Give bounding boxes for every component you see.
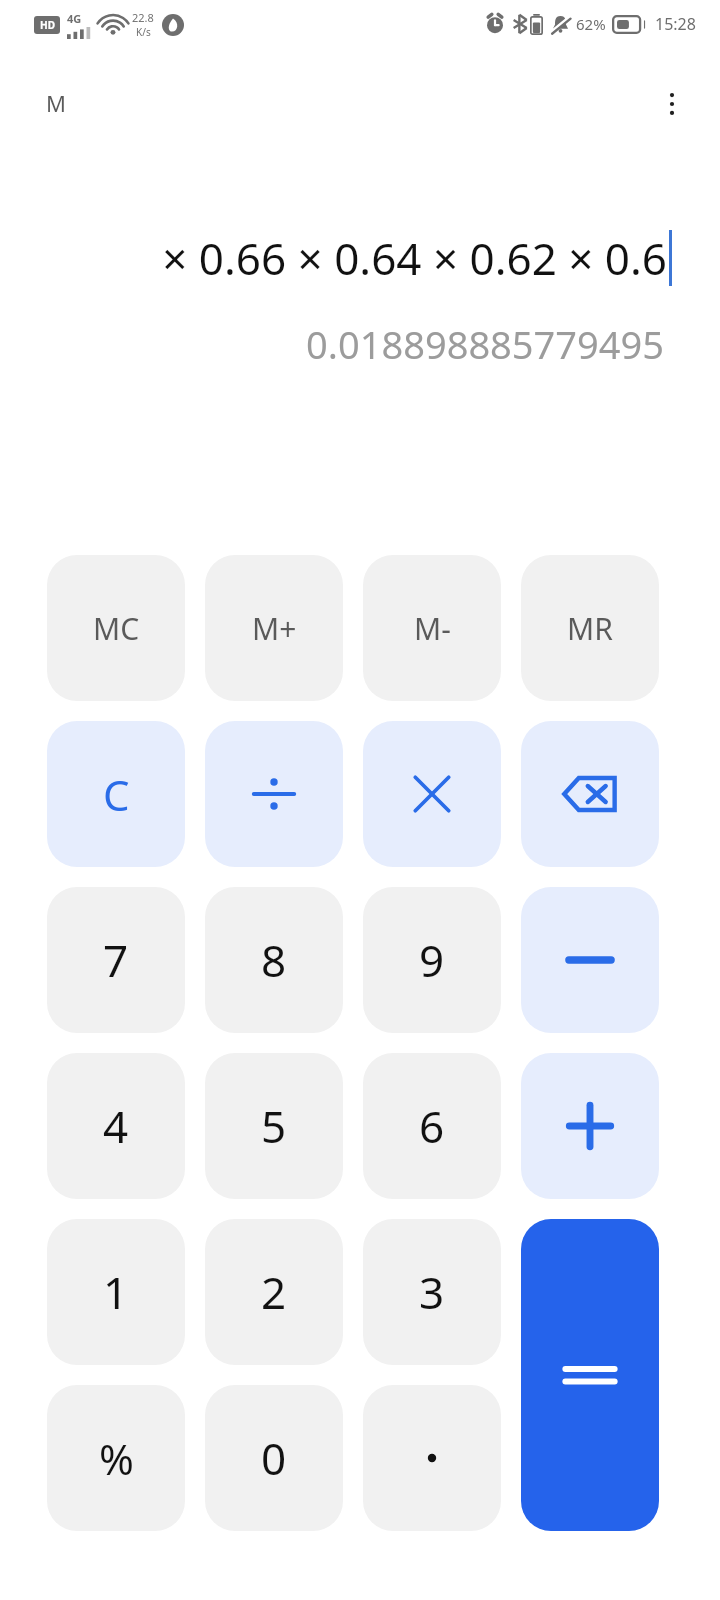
staticText: 9 bbox=[419, 930, 445, 990]
staticText: 1 bbox=[103, 1262, 129, 1322]
staticText: 5 bbox=[261, 1096, 287, 1156]
button[interactable]: 8 bbox=[205, 887, 343, 1033]
button[interactable]: More options bbox=[644, 76, 700, 132]
staticText: M- bbox=[414, 608, 451, 649]
button[interactable]: % bbox=[47, 1385, 185, 1531]
staticText: 3 bbox=[419, 1262, 445, 1322]
staticText: 0 bbox=[261, 1428, 287, 1488]
staticText: 4 bbox=[103, 1096, 129, 1156]
button[interactable]: MC bbox=[47, 555, 185, 701]
staticText: 0.018898885779495 bbox=[306, 318, 664, 370]
button[interactable]: MR bbox=[521, 555, 659, 701]
staticText: 15:28 bbox=[655, 13, 696, 35]
staticText: % bbox=[99, 1430, 134, 1487]
button[interactable]: 3 bbox=[363, 1219, 501, 1365]
button[interactable]: 9 bbox=[363, 887, 501, 1033]
staticText: M bbox=[46, 88, 66, 118]
staticText: 22.8 bbox=[132, 10, 154, 25]
staticText: K/s bbox=[136, 25, 151, 39]
button[interactable]: C bbox=[47, 721, 185, 867]
button[interactable]: Plus bbox=[521, 1053, 659, 1199]
staticText: 4G bbox=[67, 11, 82, 26]
button[interactable]: M+ bbox=[205, 555, 343, 701]
staticText: M+ bbox=[252, 608, 297, 649]
staticText: 2 bbox=[261, 1262, 287, 1322]
button[interactable]: Decimal point bbox=[363, 1385, 501, 1531]
staticText: C bbox=[103, 766, 130, 823]
button[interactable]: 4 bbox=[47, 1053, 185, 1199]
button[interactable]: Minus bbox=[521, 887, 659, 1033]
button[interactable]: Divide bbox=[205, 721, 343, 867]
staticText: × 0.66 × 0.64 × 0.62 × 0.6 bbox=[162, 228, 667, 288]
staticText: 6 bbox=[419, 1096, 445, 1156]
staticText: 7 bbox=[103, 930, 129, 990]
staticText: HD bbox=[40, 18, 55, 32]
staticText: MR bbox=[567, 608, 613, 649]
button[interactable]: 5 bbox=[205, 1053, 343, 1199]
button[interactable]: M bbox=[40, 84, 72, 122]
button[interactable]: M- bbox=[363, 555, 501, 701]
button[interactable]: Equals bbox=[521, 1219, 659, 1531]
button[interactable]: 7 bbox=[47, 887, 185, 1033]
staticText: MC bbox=[93, 608, 140, 649]
staticText: 8 bbox=[261, 930, 287, 990]
button[interactable]: 0 bbox=[205, 1385, 343, 1531]
staticText: 62% bbox=[576, 14, 606, 34]
button[interactable]: 1 bbox=[47, 1219, 185, 1365]
button[interactable]: Multiply bbox=[363, 721, 501, 867]
button[interactable]: 6 bbox=[363, 1053, 501, 1199]
button[interactable]: 2 bbox=[205, 1219, 343, 1365]
button[interactable]: Backspace bbox=[521, 721, 659, 867]
